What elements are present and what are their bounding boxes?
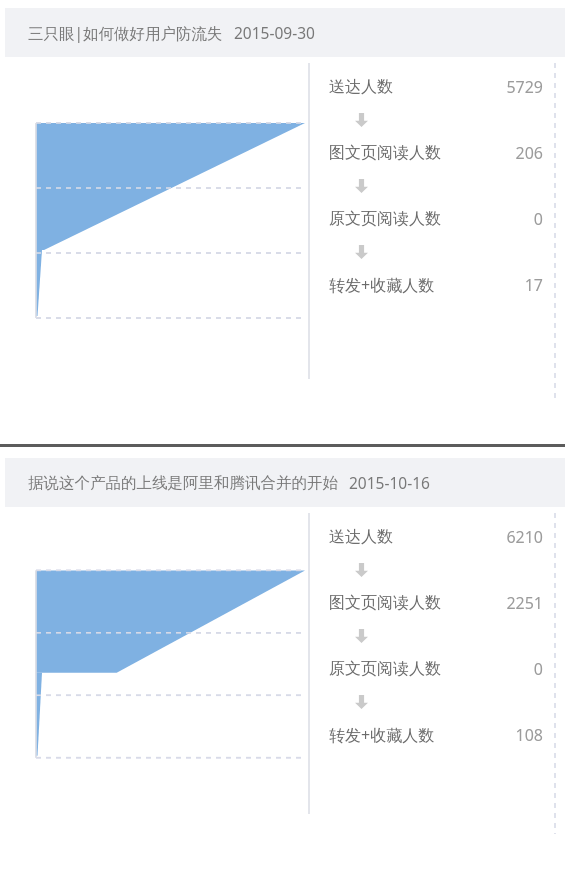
staticText: 17: [524, 274, 543, 296]
button[interactable]: 送达人数: [329, 523, 543, 551]
other: Funnel step arrow: [355, 617, 368, 655]
button[interactable]: 据说这个产品的上线是阿里和腾讯合并的开始: [28, 458, 565, 507]
other: Funnel step arrow: [355, 167, 368, 205]
button[interactable]: 图文页阅读人数: [329, 139, 543, 167]
staticText: 据说这个产品的上线是阿里和腾讯合并的开始: [28, 473, 338, 493]
button[interactable]: 转发+收藏人数: [329, 721, 543, 749]
button[interactable]: 原文页阅读人数: [329, 205, 543, 233]
other: Funnel step arrow: [355, 101, 368, 139]
button[interactable]: 送达人数: [329, 73, 543, 101]
staticText: 2015-10-16: [349, 472, 430, 493]
button[interactable]: 转发+收藏人数: [329, 271, 543, 299]
staticText: 三只眼|如何做好用户防流失: [28, 22, 223, 43]
button[interactable]: 据说这个产品的上线是阿里和腾讯合并的开始: [5, 458, 565, 872]
other: Funnel step arrow: [355, 551, 368, 589]
button[interactable]: 三只眼|如何做好用户防流失: [28, 8, 565, 57]
other: Funnel step arrow: [355, 683, 368, 721]
staticText: 图文页阅读人数: [329, 143, 441, 163]
other: Funnel step arrow: [355, 233, 368, 271]
button[interactable]: 原文页阅读人数: [329, 655, 543, 683]
staticText: 原文页阅读人数: [329, 209, 441, 229]
button[interactable]: 图文页阅读人数: [329, 589, 543, 617]
staticText: 原文页阅读人数: [329, 659, 441, 679]
staticText: 0: [533, 658, 543, 680]
staticText: 2015-09-30: [234, 22, 315, 43]
staticText: 送达人数: [329, 77, 393, 97]
staticText: 图文页阅读人数: [329, 593, 441, 613]
staticText: 0: [533, 208, 543, 230]
staticText: 6210: [506, 526, 543, 548]
staticText: 108: [515, 724, 543, 746]
staticText: 送达人数: [329, 527, 393, 547]
staticText: 转发+收藏人数: [329, 724, 435, 746]
staticText: 2251: [506, 592, 543, 614]
staticText: 5729: [506, 76, 543, 98]
button[interactable]: 三只眼|如何做好用户防流失: [5, 8, 565, 437]
staticText: 206: [515, 142, 543, 164]
staticText: 转发+收藏人数: [329, 274, 435, 296]
